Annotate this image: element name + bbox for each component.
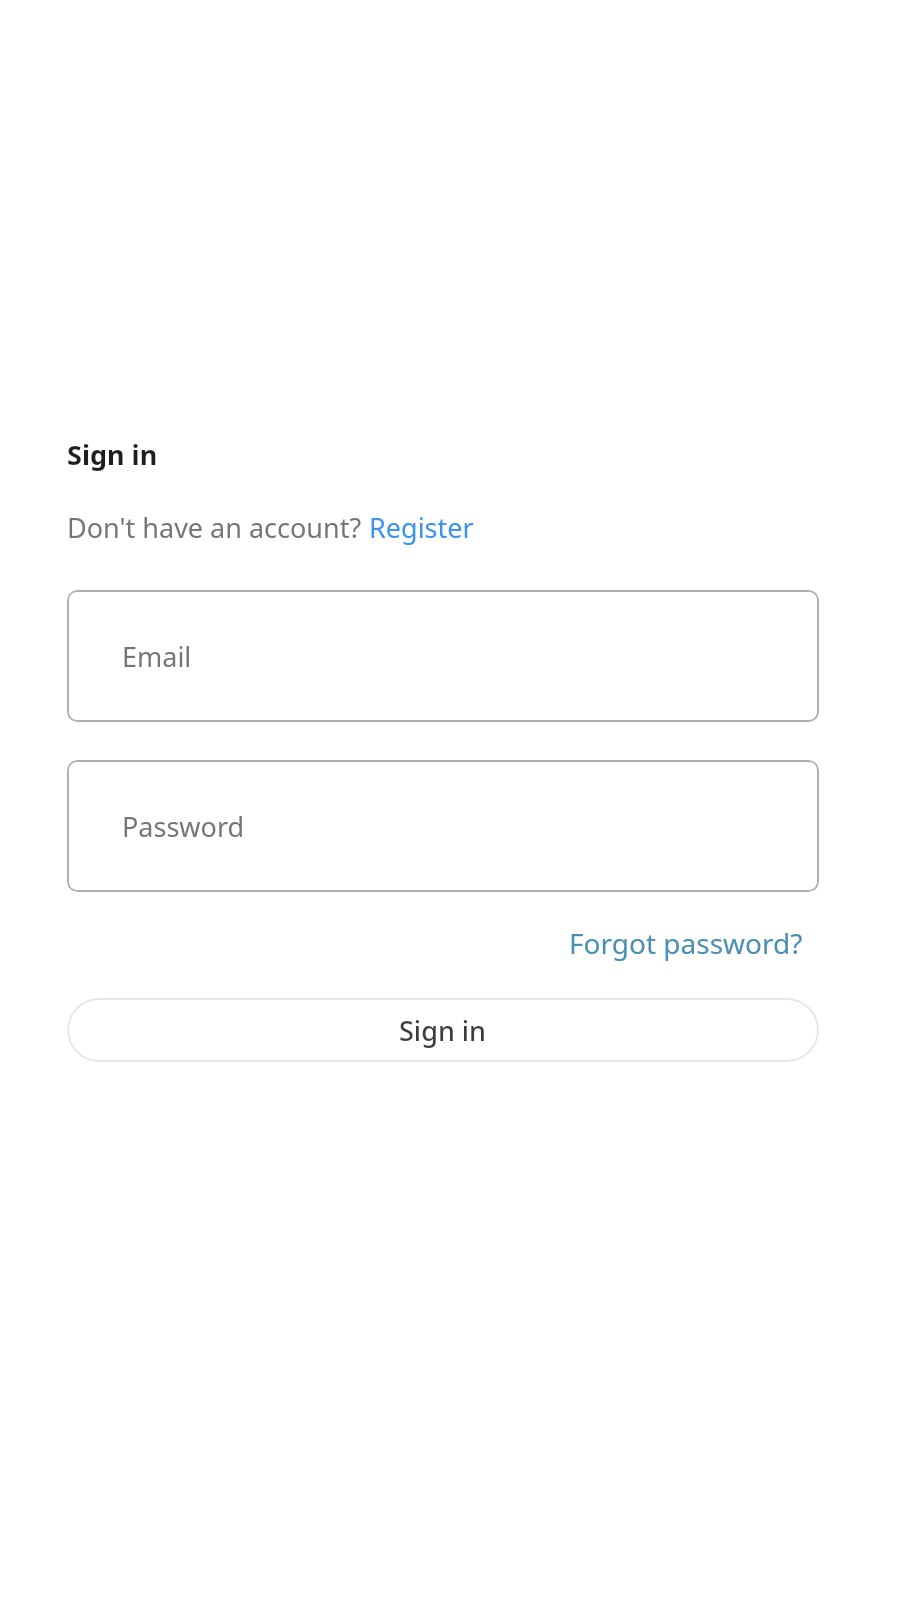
staticText: Sign in: [399, 1012, 487, 1049]
staticText: Email: [122, 638, 192, 675]
staticText: Forgot password?: [569, 924, 803, 962]
button[interactable]: Register: [369, 509, 474, 546]
staticText: Password: [122, 808, 245, 845]
button[interactable]: Forgot password?: [553, 916, 819, 970]
button[interactable]: Email: [67, 590, 819, 722]
staticText: Sign in: [67, 436, 158, 473]
staticText: Register: [369, 509, 474, 546]
button[interactable]: Sign in: [67, 998, 819, 1062]
staticText: Don't have an account?: [67, 509, 369, 546]
button[interactable]: Password: [67, 760, 819, 892]
